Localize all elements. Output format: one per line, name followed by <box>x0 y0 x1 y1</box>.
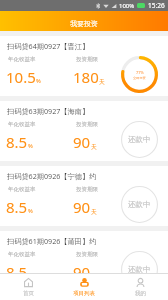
staticText: 天 <box>91 143 97 150</box>
staticText: 首页 <box>23 290 34 297</box>
staticText: 我的 <box>135 290 146 297</box>
staticText: 年化收益率 <box>8 56 36 63</box>
button[interactable]: 还款中 <box>121 186 158 223</box>
staticText: 8.5 <box>6 262 28 282</box>
staticText: 扫码贷64期0927【晋江】 <box>7 41 90 51</box>
staticText: 扫码贷61期0926【莆田】约 <box>7 236 97 246</box>
staticText: 还款中 <box>128 135 151 144</box>
staticText: 投资期限 <box>76 121 98 128</box>
button[interactable]: 77% <box>121 56 158 93</box>
staticText: 天 <box>99 78 105 85</box>
staticText: 还款中 <box>128 200 151 209</box>
button[interactable]: 首页 <box>0 274 56 300</box>
staticText: % <box>28 272 33 280</box>
button[interactable]: 还款中 <box>121 251 158 288</box>
button[interactable]: 扫码贷61期0926【莆田】约 <box>0 231 168 291</box>
button[interactable]: 扫码贷63期0927【海南】 <box>0 101 168 161</box>
staticText: 77% <box>136 70 144 75</box>
staticText: 天 <box>91 273 97 280</box>
staticText: 8.5 <box>6 197 28 217</box>
staticText: 投资期限 <box>76 251 98 258</box>
staticText: % <box>28 142 33 150</box>
staticText: % <box>28 207 33 215</box>
button[interactable]: 项目列表 <box>56 274 112 300</box>
staticText: 项目列表 <box>73 290 95 297</box>
staticText: 8.5 <box>6 132 28 152</box>
staticText: 10.5 <box>6 67 36 87</box>
staticText: 15:26 <box>148 1 165 10</box>
staticText: 我要投资 <box>70 19 98 28</box>
staticText: 年化收益率 <box>8 121 36 128</box>
staticText: 100% <box>119 2 135 10</box>
staticText: 90 <box>73 132 91 152</box>
staticText: 90 <box>73 262 91 282</box>
staticText: 还款中 <box>128 265 151 274</box>
button[interactable]: 扫码贷62期0926【宁德】约 <box>0 166 168 226</box>
button[interactable]: 还款中 <box>121 121 158 158</box>
staticText: 投资期限 <box>76 186 98 193</box>
staticText: 投资期限 <box>76 56 98 63</box>
staticText: 扫码贷62期0926【宁德】约 <box>7 171 97 181</box>
staticText: 年化收益率 <box>8 186 36 193</box>
staticText: 180 <box>73 67 99 87</box>
staticText: 天 <box>91 208 97 215</box>
staticText: 立即投资 <box>133 76 146 80</box>
staticText: 扫码贷63期0927【海南】 <box>7 106 90 116</box>
button[interactable]: 扫码贷64期0927【晋江】 <box>0 36 168 96</box>
staticText: % <box>36 77 41 85</box>
staticText: 90 <box>73 197 91 217</box>
staticText: 年化收益率 <box>8 251 36 258</box>
button[interactable]: 我的 <box>112 274 168 300</box>
